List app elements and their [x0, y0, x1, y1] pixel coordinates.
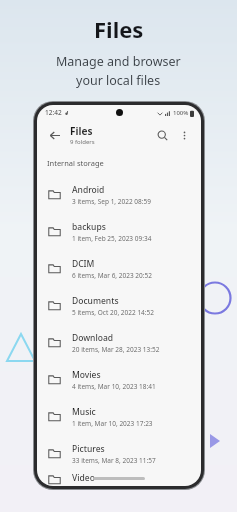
staticText: 1 item, Feb 25, 2023 09:34: [72, 234, 152, 243]
button[interactable]: Back: [44, 125, 64, 145]
staticText: 3 items, Sep 1, 2022 08:59: [72, 197, 151, 206]
staticText: 5 items, Oct 20, 2022 14:52: [72, 308, 154, 317]
staticText: Download: [72, 332, 114, 344]
button[interactable]: Movies: [37, 361, 201, 398]
button[interactable]: Documents: [37, 287, 201, 324]
button[interactable]: More options: [174, 125, 194, 145]
staticText: Internal storage: [47, 158, 104, 168]
staticText: 33 items, Mar 8, 2023 11:57: [72, 456, 156, 465]
button[interactable]: Video: [37, 472, 201, 486]
button[interactable]: DCIM: [37, 250, 201, 287]
staticText: 20 items, Mar 28, 2023 13:52: [72, 345, 160, 354]
staticText: Manage and browser: [56, 53, 181, 70]
staticText: 100%: [173, 109, 189, 117]
staticText: your local files: [76, 72, 161, 89]
staticText: 1 item, Mar 10, 2023 17:23: [72, 419, 153, 428]
staticText: Pictures: [72, 443, 105, 455]
staticText: 12:42: [45, 108, 62, 117]
staticText: Movies: [72, 369, 101, 381]
staticText: 9 folders: [70, 138, 95, 146]
staticText: Android: [72, 184, 105, 196]
button[interactable]: Search: [152, 125, 172, 145]
staticText: backups: [72, 221, 106, 233]
staticText: Video: [72, 472, 95, 484]
button[interactable]: Download: [37, 324, 201, 361]
staticText: Files: [94, 14, 144, 44]
staticText: 4 items, Mar 10, 2023 18:41: [72, 382, 156, 391]
button[interactable]: Music: [37, 398, 201, 435]
staticText: DCIM: [72, 258, 95, 270]
staticText: Documents: [72, 295, 119, 307]
staticText: Music: [72, 406, 96, 418]
button[interactable]: Pictures: [37, 435, 201, 472]
button[interactable]: Android: [37, 176, 201, 213]
button[interactable]: backups: [37, 213, 201, 250]
staticText: Files: [70, 124, 93, 138]
staticText: 6 items, Mar 6, 2023 20:52: [72, 271, 152, 280]
